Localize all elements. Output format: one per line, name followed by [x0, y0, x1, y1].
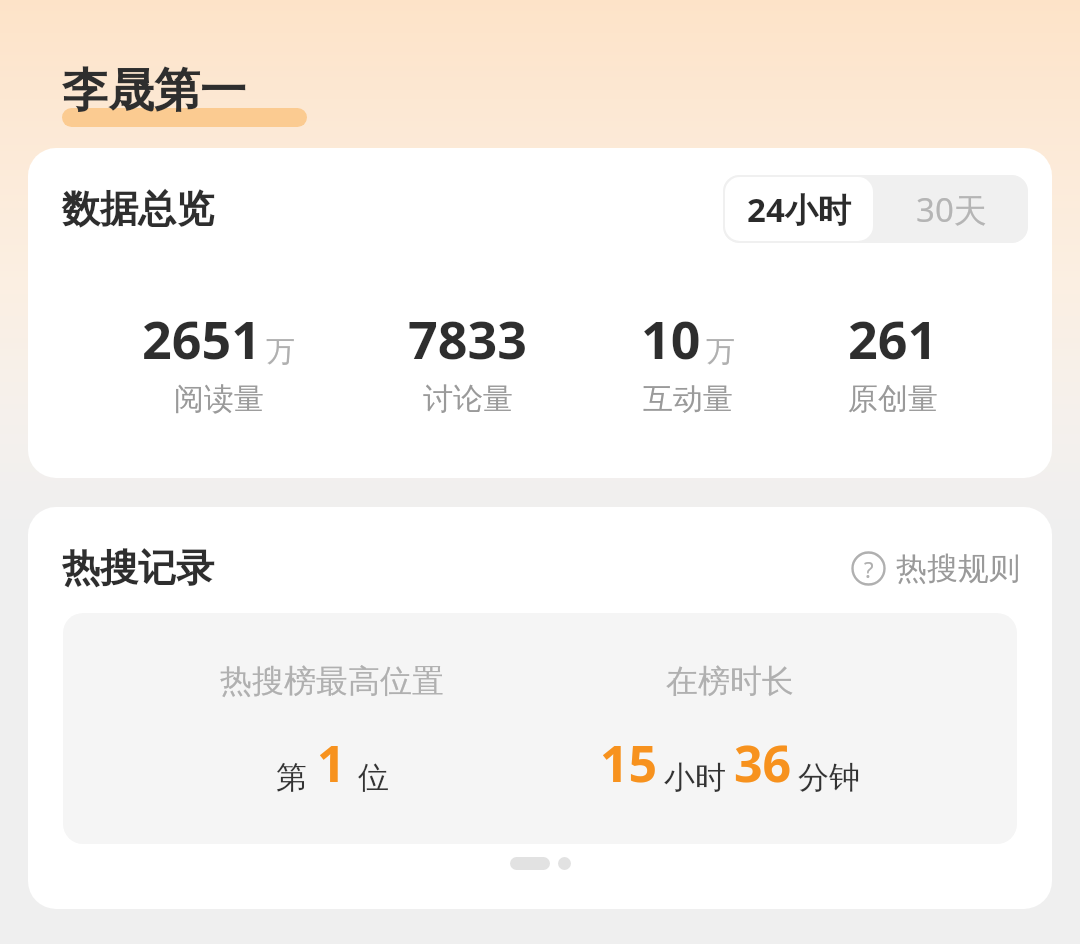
staticText: 阅读量: [174, 380, 264, 418]
staticText: 热搜榜最高位置: [220, 661, 444, 701]
staticText: 1: [317, 729, 346, 797]
staticText: 热搜规则: [896, 549, 1020, 588]
staticText: 热搜记录: [62, 544, 214, 592]
staticText: 万: [706, 333, 735, 370]
other: 热搜规则说明: [851, 551, 886, 586]
button[interactable]: 24小时: [725, 177, 873, 241]
staticText: 讨论量: [423, 380, 513, 418]
button[interactable]: 热搜规则说明: [845, 545, 1026, 592]
staticText: 24小时: [747, 187, 851, 232]
staticText: 位: [358, 758, 389, 797]
staticText: 小时: [664, 758, 726, 797]
staticText: 在榜时长: [666, 661, 794, 701]
staticText: 万: [266, 333, 295, 370]
staticText: 李晟第一: [62, 62, 246, 120]
staticText: 7833: [408, 303, 527, 374]
staticText: 261: [848, 303, 938, 374]
staticText: ?: [864, 554, 874, 584]
staticText: 互动量: [643, 380, 733, 418]
staticText: 10: [641, 303, 701, 374]
staticText: 数据总览: [62, 185, 214, 233]
staticText: 36: [734, 729, 792, 797]
button[interactable]: 30天: [875, 175, 1028, 243]
staticText: 15: [600, 729, 658, 797]
staticText: 2651: [142, 303, 261, 374]
staticText: 原创量: [848, 380, 938, 418]
staticText: 30天: [916, 187, 987, 232]
staticText: 分钟: [798, 758, 860, 797]
staticText: 第: [276, 758, 307, 797]
